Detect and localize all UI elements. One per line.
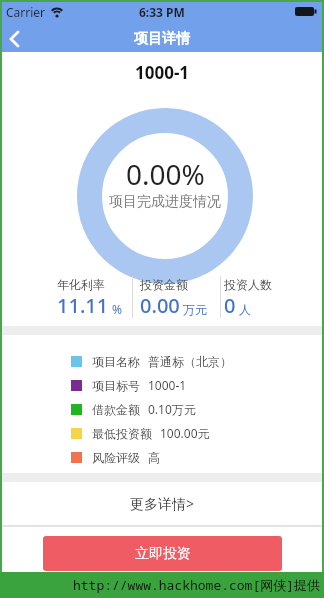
staticText: 项目详情 [134, 30, 190, 48]
staticText: 项目名称 [92, 354, 140, 369]
staticText: 1000-1 [148, 377, 187, 393]
button[interactable]: 风险评级 [2, 445, 322, 469]
button[interactable]: 最低投资额 [2, 421, 322, 445]
staticText: 风险评级 [92, 450, 140, 465]
staticText: 0 [224, 292, 236, 319]
staticText: 投资人数 [224, 277, 272, 292]
staticText: 年化利率 [57, 277, 105, 292]
staticText: 0.00% [126, 155, 205, 193]
staticText: 0.10万元 [148, 401, 196, 417]
staticText: 万元 [180, 301, 208, 317]
staticText: 最低投资额 [92, 426, 152, 441]
staticText: 普通标（北京） [148, 354, 232, 369]
staticText: Carrier [6, 4, 46, 20]
button[interactable]: 借款金额 [2, 397, 322, 421]
button[interactable] [2, 25, 32, 52]
staticText: 100.00元 [160, 425, 210, 441]
staticText: 人 [236, 301, 252, 317]
staticText: 投资金额 [140, 277, 188, 292]
button[interactable]: 更多详情> [2, 482, 322, 525]
staticText: 0.00 [140, 292, 180, 319]
staticText: http://www.hackhome.com[网侠]提供 [73, 576, 321, 594]
staticText: 11.11 [57, 292, 109, 319]
staticText: 1000-1 [135, 61, 190, 84]
staticText: 更多详情> [130, 494, 195, 513]
button[interactable]: 项目名称 [2, 349, 322, 373]
staticText: 高 [148, 450, 160, 465]
button[interactable]: 立即投资 [43, 536, 282, 571]
staticText: % [109, 301, 123, 317]
button[interactable]: 项目标号 [2, 373, 322, 397]
staticText: 项目完成进度情况 [109, 193, 221, 211]
staticText: 6:33 PM [139, 4, 185, 20]
staticText: 借款金额 [92, 402, 140, 417]
staticText: 立即投资 [135, 545, 191, 563]
staticText: 项目标号 [92, 378, 140, 393]
